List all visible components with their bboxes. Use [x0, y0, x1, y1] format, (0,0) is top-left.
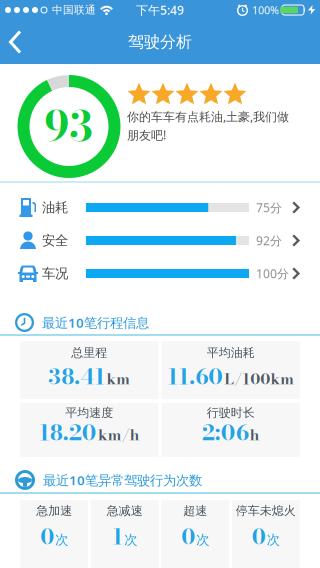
- staticText: 油耗: [42, 199, 68, 216]
- staticText: 平均速度: [65, 405, 113, 420]
- button[interactable]: 车况: [0, 257, 320, 290]
- staticText: km/h: [98, 423, 140, 446]
- staticText: 驾驶分析: [128, 32, 192, 52]
- staticText: 100分: [256, 265, 289, 281]
- staticText: 93: [44, 95, 93, 158]
- staticText: 1: [112, 520, 123, 553]
- staticText: 安全: [42, 232, 68, 249]
- staticText: 0: [40, 520, 54, 553]
- button[interactable]: 油耗: [0, 191, 320, 224]
- staticText: 次: [267, 532, 280, 548]
- staticText: 中国联通: [52, 3, 96, 16]
- staticText: km: [106, 367, 130, 390]
- staticText: 次: [124, 532, 137, 548]
- staticText: 92分: [256, 232, 282, 248]
- staticText: 下午5:49: [136, 2, 184, 18]
- staticText: 超速: [183, 503, 207, 518]
- staticText: 急减速: [107, 503, 143, 518]
- staticText: 车况: [42, 265, 68, 282]
- staticText: 2:06: [202, 416, 249, 449]
- staticText: 次: [196, 532, 209, 548]
- button[interactable]: 安全: [0, 224, 320, 257]
- staticText: 你的车车有点耗油,土豪,我们做 朋友吧!: [127, 108, 289, 143]
- staticText: h: [250, 423, 260, 446]
- staticText: L/100km: [224, 367, 294, 390]
- staticText: 最近10笔异常驾驶行为次数: [43, 471, 202, 489]
- staticText: 100%: [252, 3, 279, 17]
- staticText: 次: [55, 532, 68, 548]
- staticText: 最近10笔行程信息: [42, 314, 149, 331]
- staticText: 停车未熄火: [236, 503, 296, 518]
- staticText: 0: [252, 520, 266, 553]
- staticText: 急加速: [36, 503, 72, 518]
- staticText: 0: [181, 520, 195, 553]
- staticText: 总里程: [71, 345, 107, 360]
- staticText: 平均油耗: [207, 345, 255, 360]
- button[interactable]: Back: [0, 20, 22, 63]
- staticText: 11.60: [167, 360, 223, 393]
- staticText: 行驶时长: [207, 405, 255, 420]
- staticText: 75分: [256, 199, 282, 215]
- staticText: 38.41: [48, 360, 105, 393]
- staticText: 18.20: [39, 416, 97, 449]
